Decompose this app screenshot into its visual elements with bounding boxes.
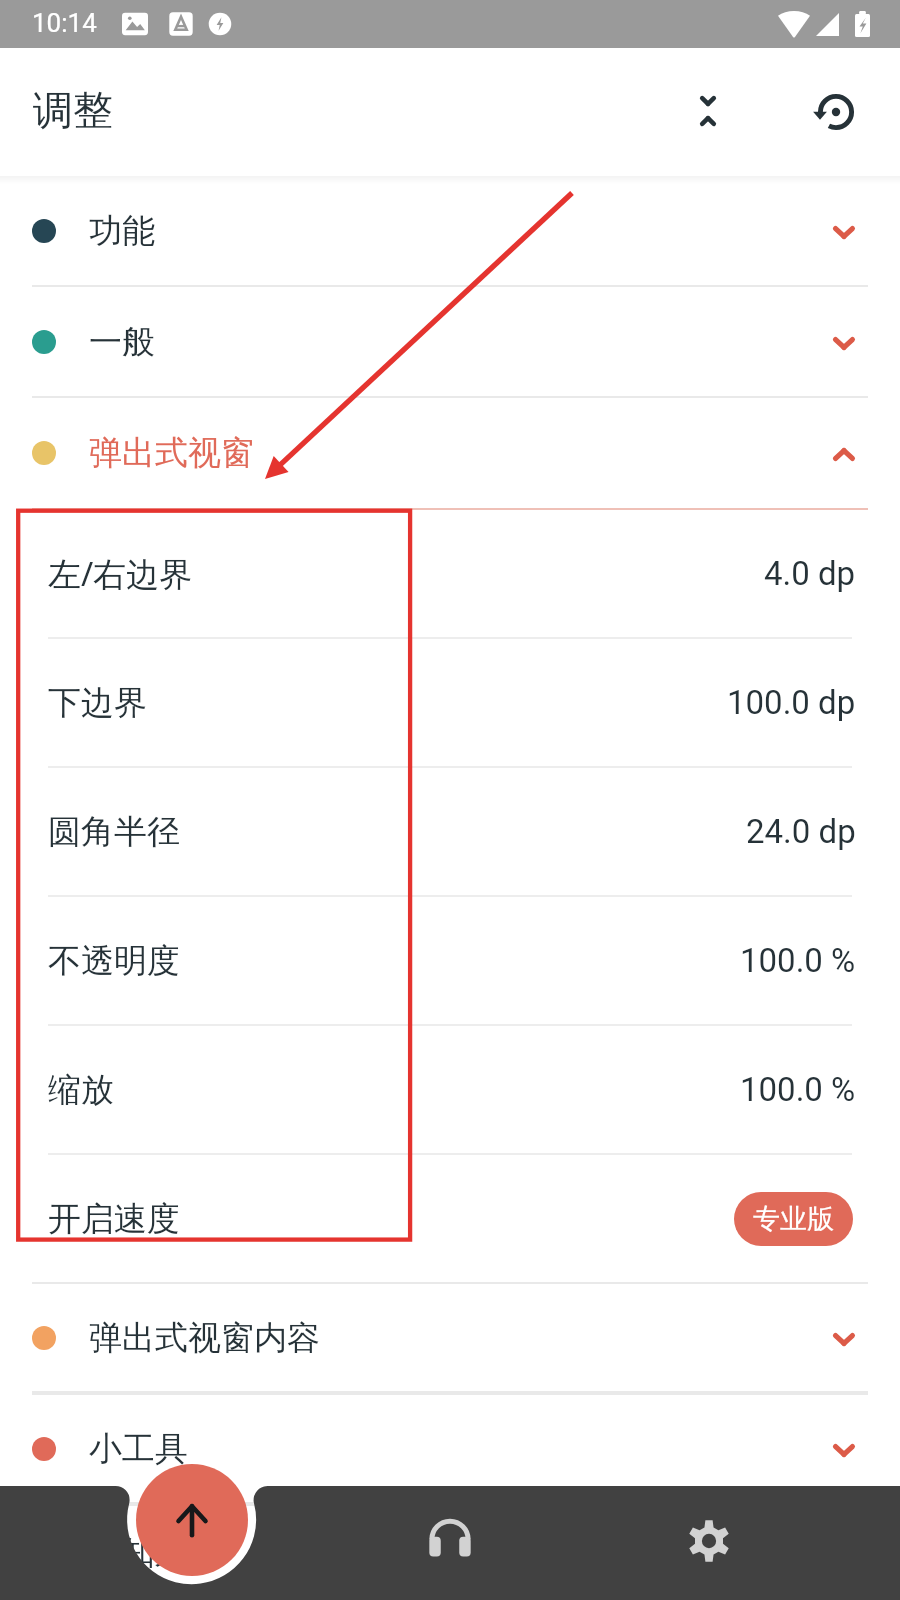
staticText: 左/右边界 [48,551,193,596]
staticText: 100.0 % [740,941,856,980]
button[interactable]: Scroll to top [136,1464,248,1576]
button[interactable]: 开启速度 [0,1155,900,1282]
button[interactable]: Layers [148,1497,236,1585]
staticText: 功能 [89,210,155,252]
staticText: 4.0 dp [764,554,856,593]
staticText: 24.0 dp [746,812,856,851]
staticText: 缩放 [48,1069,114,1111]
button[interactable]: 缩放 [0,1026,900,1153]
staticText: 专业版 [753,1202,834,1236]
button[interactable]: 下边界 [0,639,900,766]
button[interactable]: 弹出式视窗 [0,398,900,508]
button[interactable]: 一般 [0,287,900,396]
staticText: 调整 [33,85,113,135]
staticText: 开启速度 [48,1198,180,1240]
button[interactable]: 圆角半径 [0,768,900,895]
staticText: 小工具 [89,1428,188,1470]
button[interactable]: Collapse all [664,67,752,155]
staticText: 100.0 dp [727,683,856,722]
staticText: 不透明度 [48,940,180,982]
staticText: 一般 [89,321,155,363]
staticText: 100.0 % [740,1070,856,1109]
staticText: 弹出式视窗 [89,432,254,474]
button[interactable]: 不透明度 [0,897,900,1024]
button[interactable]: Reset [792,68,880,156]
staticText: 圆角半径 [48,811,180,853]
button[interactable]: 小工具 [0,1395,900,1502]
button[interactable]: Audio [406,1494,494,1582]
button[interactable]: Settings [665,1497,753,1585]
button[interactable]: 左/右边界 [0,510,900,637]
staticText: 10:14 [32,8,97,38]
button[interactable]: 弹出式视窗内容 [0,1284,900,1391]
button[interactable]: 专业版 [734,1192,853,1246]
staticText: 弹出式视窗内容 [89,1317,320,1359]
button[interactable]: 通知列 [0,1506,900,1600]
staticText: 通知列 [89,1532,188,1574]
staticText: 下边界 [48,682,147,724]
button[interactable]: 功能 [0,176,900,285]
